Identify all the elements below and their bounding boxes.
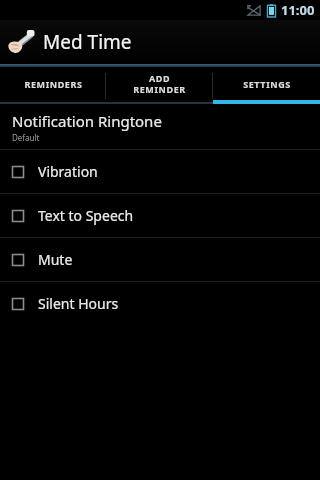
staticText: Mute	[38, 250, 73, 269]
button[interactable]: Mute	[0, 238, 320, 281]
button[interactable]: ADD REMINDER	[106, 67, 213, 104]
button[interactable]: REMINDERS	[0, 67, 106, 104]
button[interactable]: Text to Speech	[0, 194, 320, 237]
staticText: Default	[12, 132, 40, 143]
staticText: ADD REMINDER	[133, 72, 186, 95]
staticText: SETTINGS	[243, 78, 291, 90]
button[interactable]: SETTINGS	[213, 67, 320, 104]
button[interactable]: Vibration	[0, 150, 320, 193]
staticText: REMINDERS	[24, 78, 83, 90]
staticText: Med Time	[43, 29, 132, 55]
staticText: 11:00	[281, 1, 315, 19]
staticText: Silent Hours	[38, 294, 119, 313]
staticText: Notification Ringtone	[12, 111, 162, 131]
staticText: Text to Speech	[38, 206, 134, 225]
button[interactable]: Silent Hours	[0, 282, 320, 325]
staticText: Vibration	[38, 162, 98, 181]
button[interactable]: Notification Ringtone	[0, 104, 320, 149]
